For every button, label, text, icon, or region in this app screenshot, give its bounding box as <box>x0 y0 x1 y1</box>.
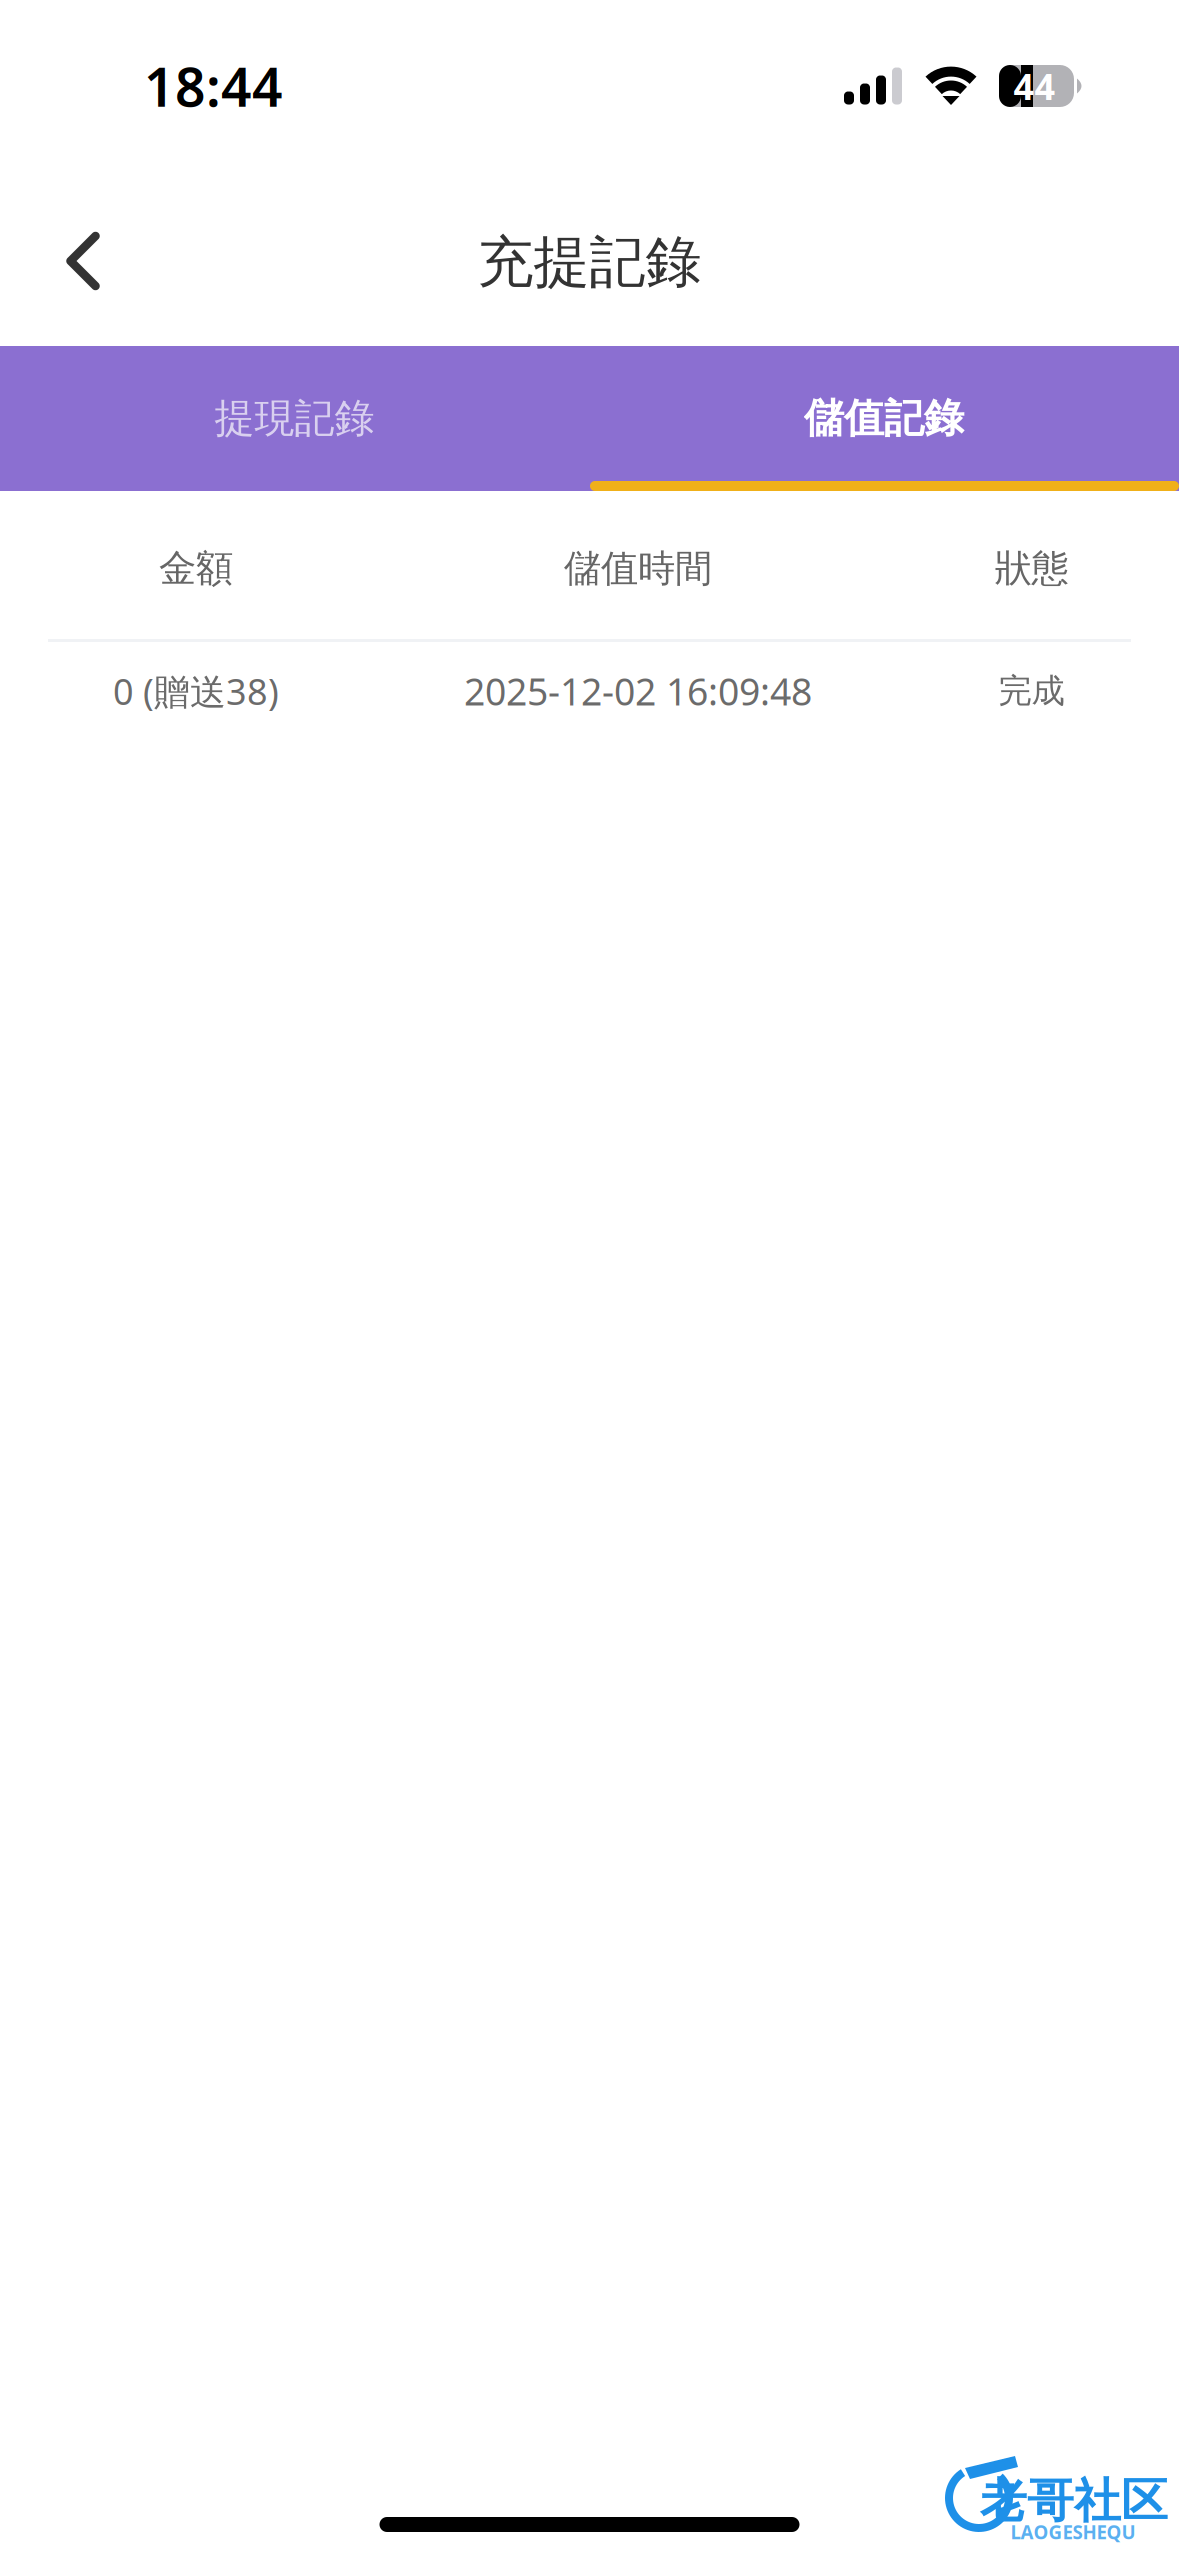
button[interactable]: Back <box>0 199 166 323</box>
staticText: 18:44 <box>144 51 283 121</box>
staticText: 儲值記錄 <box>804 394 964 443</box>
staticText: 充提記錄 <box>477 228 701 297</box>
staticText: 金額 <box>159 546 233 591</box>
staticText: 完成 <box>998 670 1064 711</box>
staticText: 狀態 <box>994 546 1068 591</box>
button[interactable]: 提現記錄 <box>0 346 589 491</box>
staticText: 儲值時間 <box>564 546 712 591</box>
button[interactable]: 儲值記錄 <box>589 346 1179 491</box>
staticText: 提現記錄 <box>214 394 374 443</box>
staticText: 44 <box>1013 62 1055 110</box>
staticText: LAOGESHEQU <box>1010 2520 1135 2544</box>
staticText: 0 (贈送38) <box>113 667 279 715</box>
staticText: 老哥社区 <box>980 2472 1168 2530</box>
staticText: 2025-12-02 16:09:48 <box>464 666 812 716</box>
